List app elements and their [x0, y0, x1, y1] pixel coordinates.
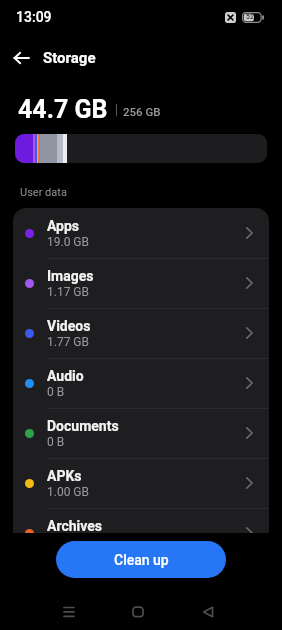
staticText: Apps [47, 218, 80, 234]
button[interactable]: Clean up [56, 541, 226, 578]
staticText: Audio [47, 368, 84, 384]
button[interactable] [7, 44, 35, 72]
staticText: User data [20, 186, 67, 199]
staticText: APKs [47, 468, 82, 484]
button[interactable]: Videos [13, 308, 269, 358]
staticText: 5.5 MB [47, 535, 85, 549]
staticText: Documents [47, 418, 119, 434]
staticText: 0 B [47, 385, 65, 399]
staticText: Storage [43, 49, 96, 67]
button[interactable]: APKs [13, 458, 269, 508]
staticText: 1.00 GB [47, 485, 90, 499]
button[interactable] [131, 605, 145, 619]
staticText: 1.17 GB [47, 285, 90, 299]
staticText: Images [47, 268, 94, 284]
button[interactable]: Images [13, 258, 269, 308]
staticText: 44.7 GB [18, 95, 108, 124]
button[interactable]: Documents [13, 408, 269, 458]
button[interactable]: Archives [13, 508, 269, 558]
staticText: Clean up [114, 552, 169, 568]
button[interactable] [62, 605, 76, 619]
button[interactable] [201, 605, 215, 619]
staticText: Videos [47, 318, 91, 334]
staticText: 52 [246, 13, 254, 21]
staticText: 13:09 [16, 9, 52, 25]
staticText: 0 B [47, 435, 65, 449]
staticText: 1.77 GB [47, 335, 90, 349]
button[interactable]: Apps [13, 208, 269, 258]
staticText: 19.0 GB [47, 235, 90, 249]
button[interactable]: Audio [13, 358, 269, 408]
staticText: Archives [47, 518, 103, 534]
staticText: 256 GB [123, 105, 161, 118]
